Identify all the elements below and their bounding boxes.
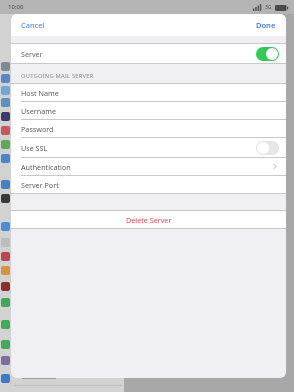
button[interactable]: Authentication xyxy=(11,158,286,175)
button[interactable]: Off xyxy=(256,141,279,155)
staticText: 10:00 xyxy=(8,3,24,11)
staticText: Done xyxy=(256,20,276,30)
staticText: Authentication xyxy=(21,162,71,172)
button[interactable]: Server xyxy=(11,44,286,63)
button[interactable]: Password xyxy=(11,120,286,137)
staticText: 3G xyxy=(265,4,272,11)
button[interactable]: On xyxy=(256,47,279,61)
button[interactable]: Cancel xyxy=(11,16,55,34)
button[interactable]: Host Name xyxy=(11,84,286,101)
staticText: Server xyxy=(21,49,43,59)
staticText: Cancel xyxy=(21,20,45,30)
staticText: Host Name xyxy=(21,88,59,98)
staticText: Server Port xyxy=(21,180,59,190)
staticText: OUTGOING MAIL SERVER xyxy=(21,72,94,80)
staticText: Delete Server xyxy=(126,215,172,225)
staticText: Password xyxy=(21,124,54,134)
staticText: Username xyxy=(21,106,56,116)
button[interactable]: Username xyxy=(11,102,286,119)
button[interactable]: Done xyxy=(246,16,286,34)
button[interactable]: Delete Server xyxy=(11,211,286,228)
button[interactable]: Use SSL xyxy=(11,138,286,157)
button[interactable]: Server Port xyxy=(11,176,286,193)
staticText: Use SSL xyxy=(21,143,48,153)
